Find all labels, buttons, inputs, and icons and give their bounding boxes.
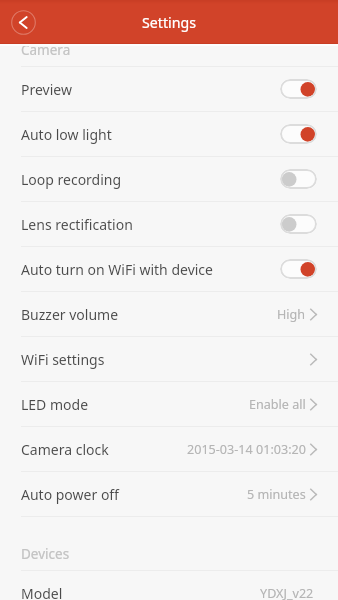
button[interactable]: Model — [0, 571, 338, 600]
button[interactable]: Auto turn on WiFi with device — [0, 247, 338, 292]
staticText: Camera clock — [21, 440, 187, 459]
staticText: Auto turn on WiFi with device — [21, 260, 280, 279]
staticText: Model — [21, 584, 260, 600]
staticText: Preview — [21, 80, 280, 99]
staticText: Enable all — [249, 396, 306, 413]
staticText: Camera — [21, 46, 71, 59]
button[interactable]: Camera clock — [0, 427, 338, 472]
button[interactable]: Preview — [0, 67, 338, 112]
staticText: 2015-03-14 01:03:20 — [187, 441, 306, 458]
staticText: YDXJ_v22 — [260, 585, 314, 600]
staticText: Devices — [21, 545, 70, 563]
staticText: Lens rectification — [21, 215, 280, 234]
staticText: Buzzer volume — [21, 305, 277, 324]
button[interactable]: Auto power off — [0, 472, 338, 517]
staticText: High — [277, 306, 306, 323]
staticText: LED mode — [21, 395, 249, 414]
button[interactable]: Auto low light — [0, 112, 338, 157]
button[interactable]: WiFi settings — [0, 337, 338, 382]
staticText: Loop recording — [21, 170, 280, 189]
button[interactable]: LED mode — [0, 382, 338, 427]
staticText: 5 minutes — [247, 486, 306, 503]
button[interactable]: Lens rectification — [0, 202, 338, 247]
staticText: Settings — [142, 13, 196, 32]
staticText: Auto low light — [21, 125, 280, 144]
staticText: WiFi settings — [21, 350, 306, 369]
button[interactable]: Buzzer volume — [0, 292, 338, 337]
button[interactable]: Back — [8, 7, 39, 38]
button[interactable]: Loop recording — [0, 157, 338, 202]
staticText: Auto power off — [21, 485, 247, 504]
